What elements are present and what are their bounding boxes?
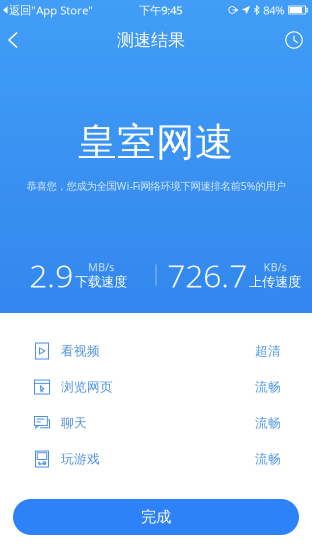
staticText: 皇室网速: [78, 118, 234, 167]
staticText: 测速结果: [117, 29, 185, 51]
staticText: 上传速度: [249, 273, 301, 290]
staticText: 下载速度: [75, 273, 127, 290]
staticText: 84%: [263, 2, 284, 18]
staticText: 超清: [255, 343, 281, 359]
staticText: 流畅: [255, 379, 281, 395]
staticText: 返回"App Store": [9, 2, 93, 18]
staticText: 玩游戏: [61, 451, 100, 467]
staticText: KB/s: [263, 260, 286, 274]
staticText: 恭喜您，您成为全国Wi-Fi网络环境下网速排名前5%的用户: [26, 179, 285, 193]
staticText: 流畅: [255, 451, 281, 467]
button[interactable]: 看视频: [0, 333, 312, 369]
button[interactable]: 完成: [13, 499, 299, 535]
staticText: 2.9: [29, 253, 73, 297]
staticText: 下午9:45: [139, 2, 182, 18]
staticText: MB/s: [88, 260, 114, 274]
button[interactable]: 浏览网页: [0, 369, 312, 405]
staticText: 流畅: [255, 415, 281, 431]
staticText: 浏览网页: [61, 379, 113, 395]
button[interactable]: 返回"App Store": [0, 0, 93, 20]
button[interactable]: 玩游戏: [0, 441, 312, 477]
button[interactable]: Back: [0, 20, 26, 60]
staticText: 完成: [141, 507, 171, 527]
staticText: 聊天: [61, 415, 87, 431]
staticText: 726.7: [167, 253, 247, 297]
staticText: 看视频: [61, 343, 100, 359]
button[interactable]: 聊天: [0, 405, 312, 441]
button[interactable]: History: [276, 20, 312, 60]
